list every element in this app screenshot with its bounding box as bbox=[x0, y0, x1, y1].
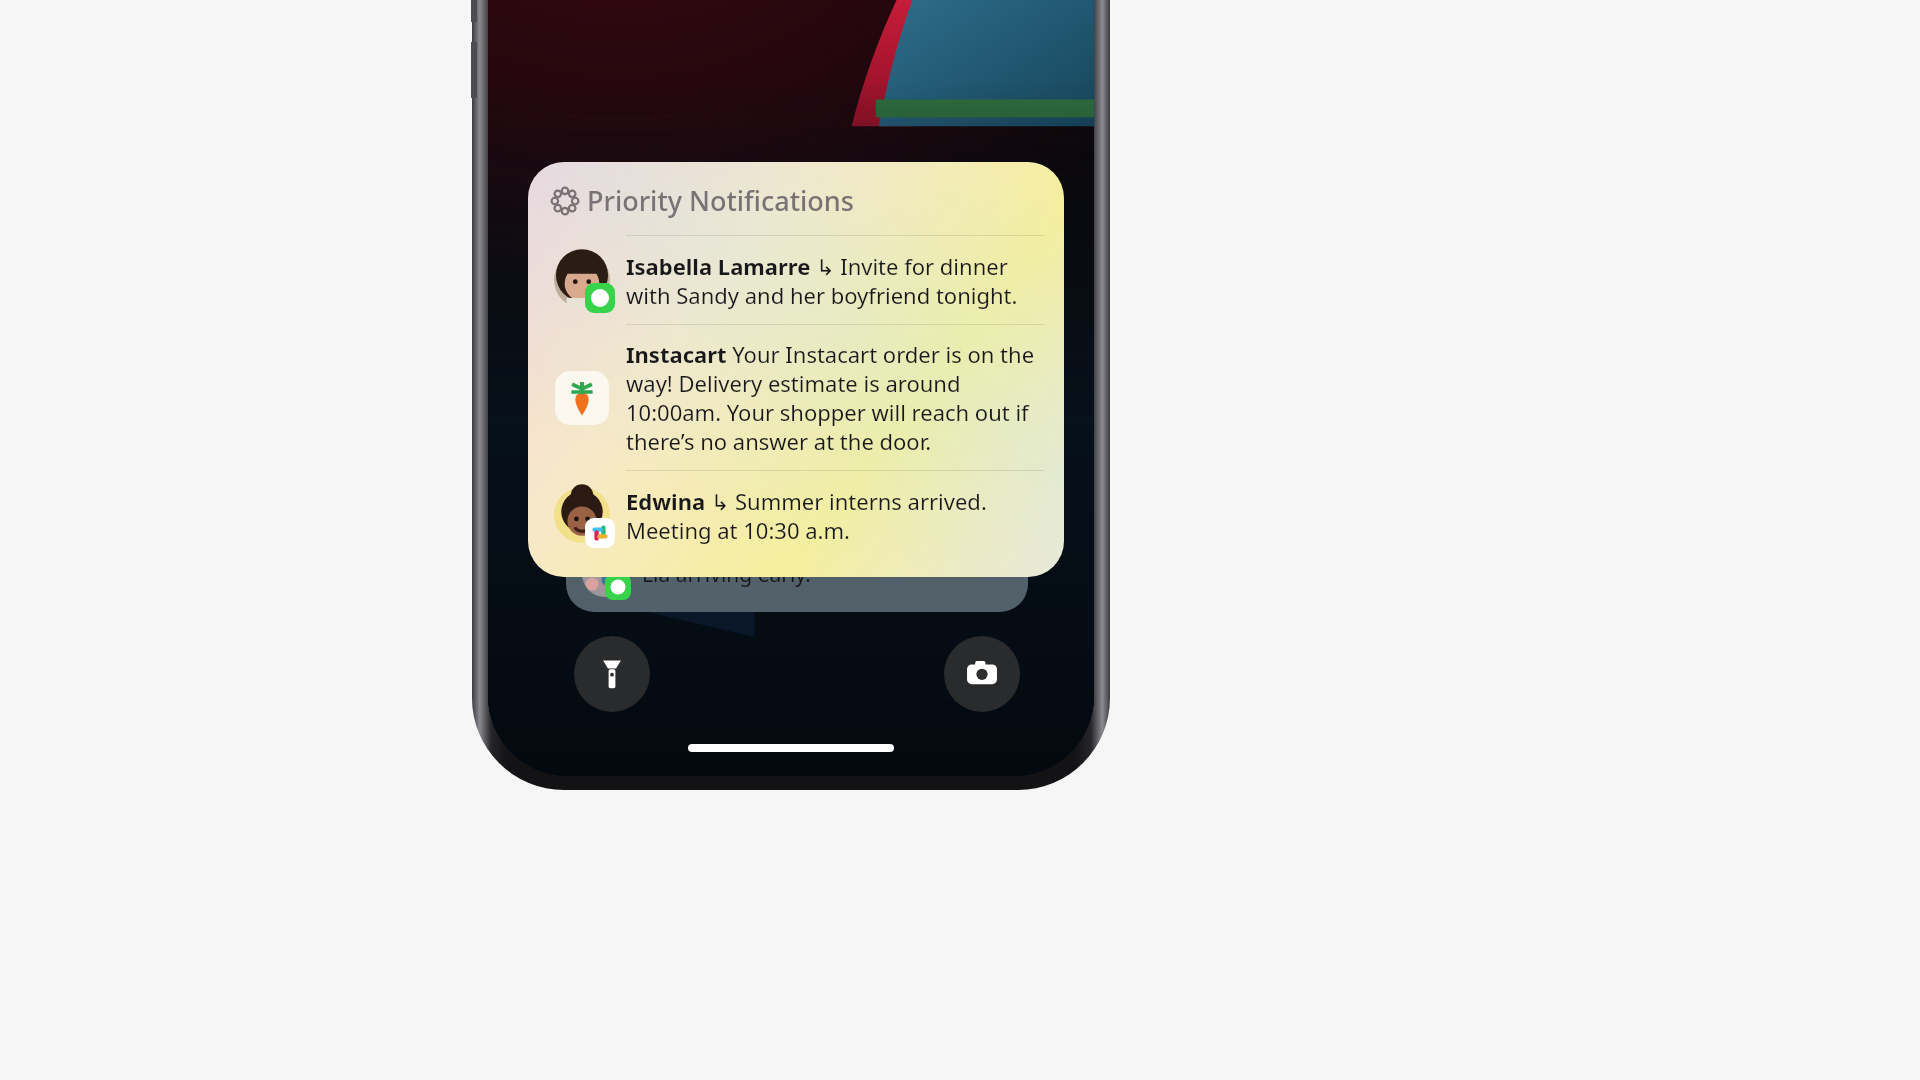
button[interactable]: Flashlight bbox=[574, 636, 650, 712]
staticText: Edwina ↳ Summer interns arrived. Meeting… bbox=[626, 486, 1044, 545]
button[interactable]: Edwina ↳ Summer interns arrived. Meeting… bbox=[552, 471, 1044, 559]
staticText: Isabella Lamarre ↳ Invite for dinner wit… bbox=[626, 251, 1044, 310]
staticText: Lia arriving early. bbox=[642, 560, 811, 589]
button[interactable]: Camera bbox=[944, 636, 1020, 712]
button[interactable]: Priority Notifications bbox=[528, 162, 1064, 577]
button[interactable]: Instacart Your Instacart order is on the… bbox=[552, 325, 1044, 470]
button[interactable]: Isabella Lamarre ↳ Invite for dinner wit… bbox=[552, 236, 1044, 324]
staticText: Instacart Your Instacart order is on the… bbox=[626, 339, 1044, 456]
staticText: Priority Notifications bbox=[587, 182, 854, 219]
button[interactable]: Lia arriving early. bbox=[566, 536, 1028, 612]
